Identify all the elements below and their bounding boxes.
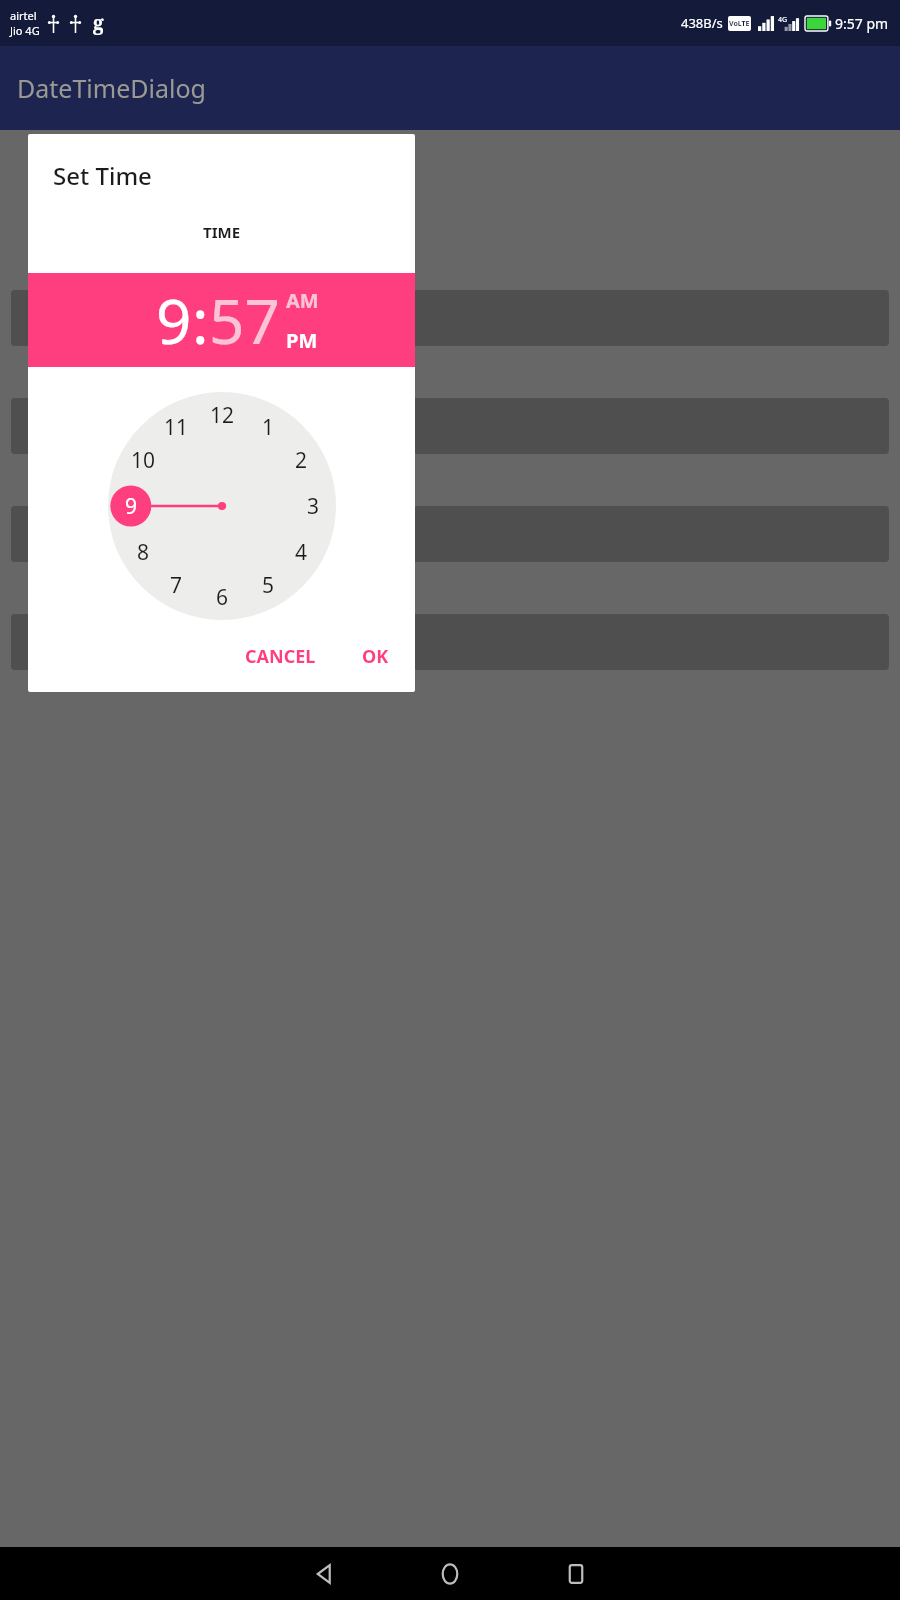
staticText: : [192, 278, 209, 362]
button[interactable] [11, 290, 889, 346]
staticText: 11 [164, 413, 189, 442]
staticText: 2 [295, 446, 308, 475]
staticText: 1 [262, 413, 275, 442]
staticText: 6 [216, 583, 229, 612]
staticText: 4 [295, 538, 308, 567]
staticText: 438B/s [681, 14, 723, 32]
staticText: DateTimeDialog [17, 71, 206, 105]
staticText: 9 [125, 492, 138, 521]
staticText: 12 [210, 401, 235, 430]
staticText: VoLTE [729, 19, 750, 29]
button[interactable]: CANCEL [235, 635, 326, 678]
staticText: 9:57 pm [835, 14, 889, 33]
staticText: 10 [131, 446, 156, 475]
staticText: 8 [137, 538, 150, 567]
button[interactable]: 12 [108, 392, 336, 620]
button[interactable] [11, 614, 889, 670]
button[interactable] [11, 506, 889, 562]
button[interactable]: AM [286, 287, 319, 314]
staticText: g [93, 10, 104, 36]
button[interactable]: Home [437, 1561, 463, 1587]
button[interactable]: TIME [28, 214, 415, 250]
staticText: Set Time [53, 159, 152, 192]
staticText: OK [362, 644, 389, 669]
staticText: TIME [203, 222, 241, 242]
staticText: airtel [10, 8, 37, 23]
button[interactable]: 9 [156, 278, 192, 362]
staticText: 4G [778, 15, 788, 25]
button[interactable]: 57 [209, 278, 280, 362]
staticText: 5 [262, 571, 275, 600]
button[interactable]: Recent apps [563, 1561, 589, 1587]
staticText: 3 [307, 492, 320, 521]
staticText: Jio 4G [10, 23, 40, 38]
staticText: CANCEL [245, 644, 316, 669]
staticText: 7 [170, 571, 183, 600]
button[interactable]: OK [352, 635, 399, 678]
button[interactable]: PM [286, 327, 318, 354]
button[interactable]: Back [311, 1561, 337, 1587]
button[interactable] [11, 398, 889, 454]
